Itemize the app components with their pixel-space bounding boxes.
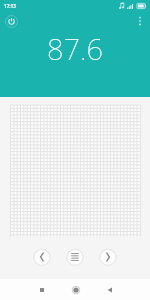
button[interactable]: Recents [33,279,50,300]
staticText: 17:13 [4,3,16,9]
button[interactable]: Station list [66,248,84,266]
staticText: 87.6 [0,29,150,68]
button[interactable]: Back [101,279,118,300]
button[interactable]: More options [132,13,147,28]
button[interactable]: Previous station [33,248,51,266]
button[interactable]: Power [4,14,19,29]
button[interactable]: Home [67,279,84,300]
button[interactable]: Next station [99,248,117,266]
